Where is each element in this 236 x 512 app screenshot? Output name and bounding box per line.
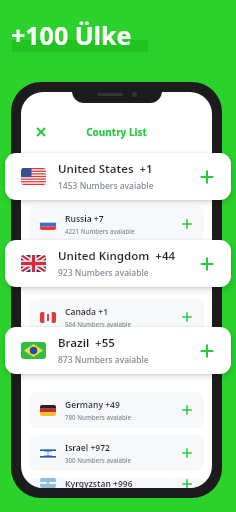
button[interactable]: United Kingdom +44 <box>5 240 231 287</box>
staticText: 1453 Numbers avaiable <box>58 180 154 192</box>
button[interactable]: Germany +49 <box>29 392 204 428</box>
button[interactable]: Kyrgyzstan +996 <box>29 478 204 488</box>
button[interactable]: Canada +1 <box>29 299 204 335</box>
button[interactable]: United States +1 <box>5 153 231 200</box>
staticText: Germany +49 <box>65 399 120 411</box>
button[interactable]: Close <box>31 122 51 142</box>
staticText: 780 Numbers avaiable <box>65 413 131 421</box>
button[interactable]: Brazil +55 <box>5 327 231 374</box>
staticText: 300 Numbers avaiable <box>65 456 131 464</box>
button[interactable]: Israel +972 <box>29 435 204 471</box>
staticText: United States +1 <box>58 161 153 177</box>
staticText: Kyrgyzstan +996 <box>65 478 133 488</box>
staticText: 923 Numbers avaiable <box>58 267 149 279</box>
staticText: United Kingdom +44 <box>58 248 176 264</box>
staticText: Canada +1 <box>65 306 109 318</box>
staticText: 4221 Numbers avaiable <box>65 227 135 235</box>
staticText: 873 Numbers avaiable <box>58 354 149 366</box>
staticText: Brazil +55 <box>58 335 115 351</box>
staticText: Russia +7 <box>65 213 104 225</box>
staticText: Israel +972 <box>65 442 110 454</box>
staticText: Country List <box>86 125 147 139</box>
staticText: +100 Ülke <box>11 18 132 52</box>
staticText: 564 Numbers avaiable <box>65 320 131 328</box>
button[interactable]: Russia +7 <box>29 206 204 242</box>
